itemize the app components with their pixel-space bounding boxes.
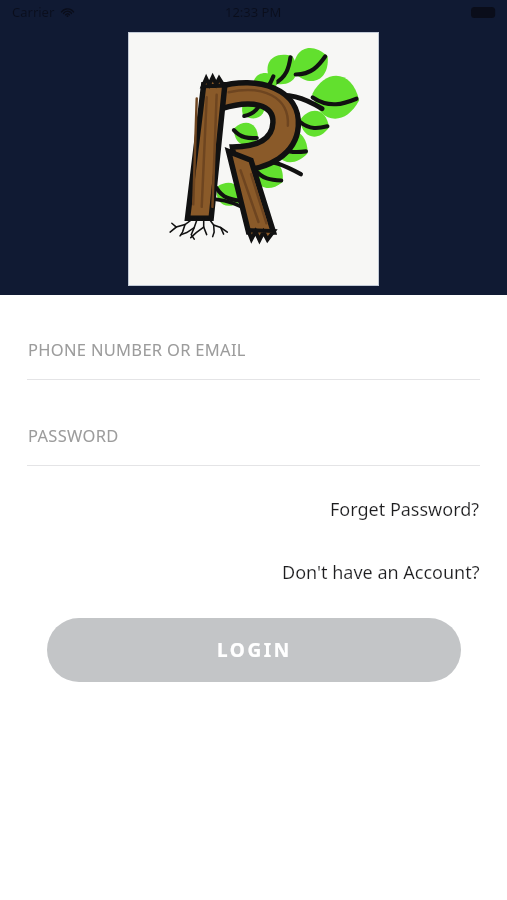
button[interactable]: Don't have an Account? [0, 556, 507, 589]
button[interactable]: PHONE NUMBER OR EMAIL [0, 335, 507, 380]
staticText: Don't have an Account? [282, 560, 480, 585]
staticText: PHONE NUMBER OR EMAIL [28, 338, 246, 360]
staticText: Forget Password? [330, 497, 480, 522]
staticText: Carrier [12, 3, 55, 21]
button[interactable]: LOGIN [47, 618, 461, 682]
button[interactable]: Forget Password? [0, 493, 507, 526]
staticText: PASSWORD [28, 424, 119, 446]
staticText: 12:33 PM [225, 3, 282, 21]
staticText: LOGIN [217, 637, 292, 663]
button[interactable]: PASSWORD [0, 421, 507, 466]
